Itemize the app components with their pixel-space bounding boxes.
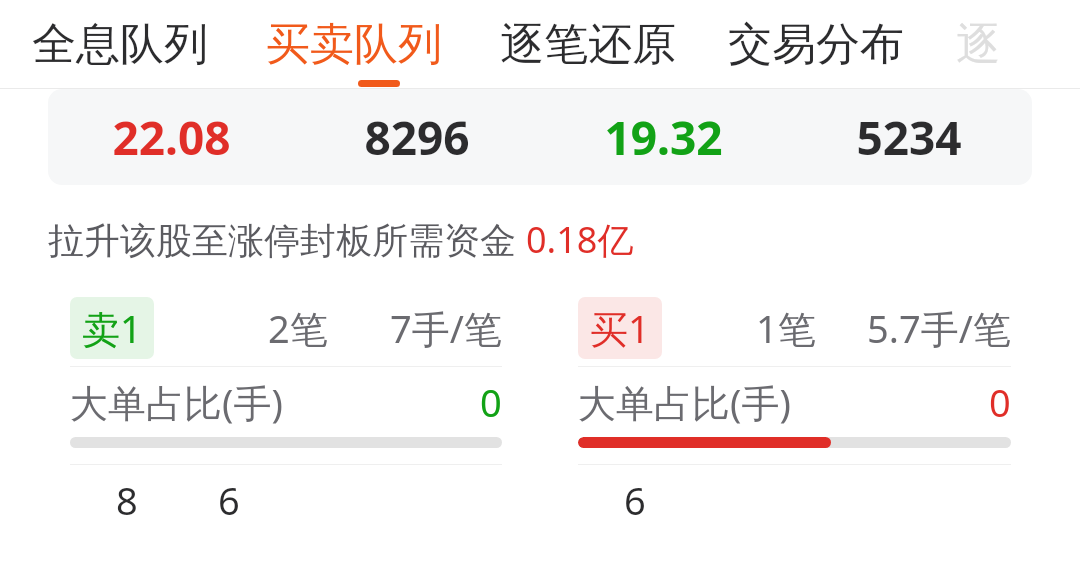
staticText: 0.18亿 (526, 215, 634, 264)
staticText: 19.32 (604, 106, 723, 169)
staticText: 6 (624, 474, 646, 526)
staticText: 大单占比(手) (70, 376, 283, 428)
staticText: 5234 (856, 106, 962, 169)
staticText: 6 (218, 474, 240, 526)
button[interactable]: 逐笔还原 (500, 11, 676, 78)
staticText: 5.7手/笔 (867, 302, 1011, 354)
button[interactable]: 卖1 (48, 290, 524, 535)
staticText: 全息队列 (32, 17, 208, 72)
staticText: 卖1 (82, 302, 142, 354)
button[interactable]: 全息队列 (32, 11, 208, 78)
staticText: 逐 (956, 17, 1000, 72)
staticText: 0 (989, 376, 1011, 428)
staticText: 8296 (364, 106, 470, 169)
staticText: 8 (116, 474, 138, 526)
staticText: 大单占比(手) (578, 376, 791, 428)
staticText: 逐笔还原 (500, 17, 676, 72)
staticText: 买卖队列 (266, 17, 442, 72)
staticText: 7手/笔 (390, 302, 502, 354)
staticText: 2笔 (268, 302, 328, 354)
staticText: 1笔 (756, 302, 816, 354)
staticText: 22.08 (112, 106, 231, 169)
button[interactable]: 买卖队列 (266, 11, 442, 78)
button[interactable]: 买1 (556, 290, 1033, 535)
staticText: 买1 (590, 302, 650, 354)
button[interactable]: 交易分布 (728, 11, 904, 78)
staticText: 拉升该股至涨停封板所需资金 (48, 215, 526, 264)
staticText: 交易分布 (728, 17, 904, 72)
staticText: 0 (480, 376, 502, 428)
